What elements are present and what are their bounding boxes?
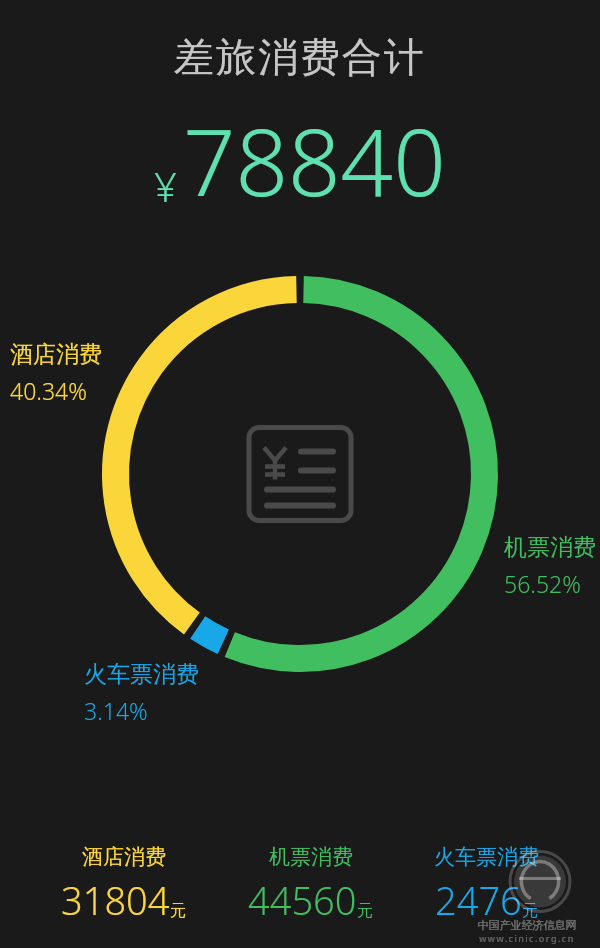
button[interactable]: 酒店消费 — [61, 844, 186, 926]
button[interactable]: 火车票消费 — [434, 844, 539, 926]
button[interactable]: Travel expense breakdown chart — [0, 0, 600, 948]
staticText: 44560 — [248, 874, 357, 926]
staticText: 元 — [357, 901, 373, 921]
staticText: 机票消费 — [269, 844, 353, 870]
staticText: 差旅消费合计 — [0, 32, 600, 82]
staticText: 78840 — [183, 98, 446, 223]
staticText: 火车票消费 — [434, 844, 539, 870]
staticText: 3.14% — [84, 695, 148, 726]
staticText: 中国产业经济信息网 — [462, 918, 592, 932]
staticText: ¥ — [154, 159, 177, 213]
button[interactable]: 酒店消费 — [10, 340, 102, 406]
staticText: 机票消费 — [504, 533, 596, 562]
button[interactable]: 机票消费 — [504, 533, 596, 599]
staticText: 元 — [170, 901, 186, 921]
button[interactable]: 火车票消费 — [84, 660, 199, 726]
staticText: 2476 — [435, 874, 522, 926]
staticText: 酒店消费 — [82, 844, 166, 870]
staticText: 元 — [522, 901, 538, 921]
staticText: 酒店消费 — [10, 340, 102, 369]
staticText: www.cinic.org.cn — [462, 932, 592, 944]
staticText: 31804 — [61, 874, 170, 926]
staticText: 40.34% — [10, 375, 87, 406]
staticText: 火车票消费 — [84, 660, 199, 689]
button[interactable]: 机票消费 — [248, 844, 373, 926]
staticText: 56.52% — [504, 568, 581, 599]
